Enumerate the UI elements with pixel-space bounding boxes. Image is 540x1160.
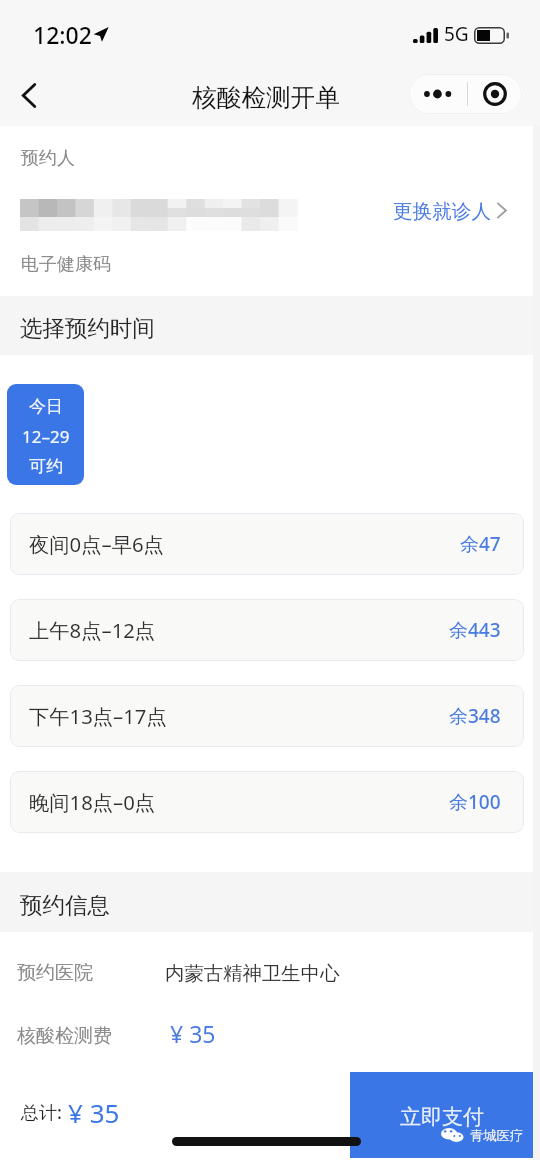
staticText: 可约	[29, 456, 63, 477]
staticText: 12:02	[33, 19, 92, 50]
button[interactable]: 上午8点–12点	[10, 599, 524, 661]
button[interactable]: 更换就诊人	[388, 188, 512, 236]
button[interactable]: 今日	[7, 384, 84, 485]
staticText: 余100	[449, 789, 501, 815]
staticText: 预约信息	[20, 891, 110, 919]
staticText: 更换就诊人	[393, 199, 491, 224]
staticText: 下午13点–17点	[29, 702, 167, 730]
staticText: 电子健康码	[21, 253, 111, 276]
button[interactable]: More options	[409, 74, 467, 114]
staticText: ¥ 35	[68, 1095, 120, 1130]
staticText: 余443	[449, 617, 501, 643]
staticText: 核酸检测费	[17, 1024, 112, 1048]
staticText: 上午8点–12点	[29, 616, 156, 644]
button[interactable]: Back	[7, 73, 51, 117]
staticText: 选择预约时间	[20, 314, 155, 342]
staticText: 今日	[29, 396, 63, 417]
staticText: ¥ 35	[170, 1018, 216, 1049]
staticText: 预约人	[21, 147, 75, 170]
button[interactable]: 下午13点–17点	[10, 685, 524, 747]
staticText: 内蒙古精神卫生中心	[165, 961, 340, 985]
staticText: 5G	[444, 21, 469, 47]
staticText: 余348	[449, 703, 501, 729]
staticText: 余47	[460, 531, 501, 557]
staticText: 12–29	[22, 425, 70, 448]
button[interactable]: 立即支付	[350, 1072, 534, 1158]
button[interactable]: 夜间0点–早6点	[10, 513, 524, 575]
staticText: 夜间0点–早6点	[29, 530, 164, 558]
button[interactable]: 晚间18点–0点	[10, 771, 524, 833]
button[interactable]: Close mini program	[468, 74, 522, 114]
staticText: 总计:	[21, 1100, 62, 1125]
staticText: 预约医院	[17, 961, 93, 985]
staticText: 晚间18点–0点	[29, 788, 156, 816]
staticText: 青城医疗	[470, 1127, 524, 1144]
staticText: 核酸检测开单	[192, 82, 341, 113]
staticText: 立即支付	[400, 1104, 484, 1130]
